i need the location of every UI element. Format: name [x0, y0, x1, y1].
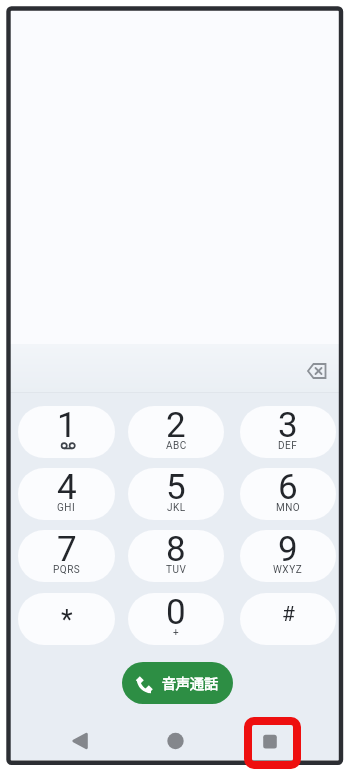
staticText: 7: [57, 530, 77, 570]
staticText: 0: [166, 593, 186, 633]
staticText: JKL: [167, 502, 186, 514]
staticText: GHI: [57, 502, 76, 514]
button[interactable]: 8: [128, 530, 224, 582]
button[interactable]: 0: [128, 593, 224, 645]
button[interactable]: [62, 723, 98, 759]
button[interactable]: [252, 723, 288, 759]
button[interactable]: 6: [240, 468, 336, 520]
staticText: WXYZ: [273, 564, 303, 576]
staticText: 8: [166, 530, 186, 570]
button[interactable]: [157, 723, 193, 759]
staticText: 2: [166, 406, 186, 446]
staticText: *: [61, 604, 73, 636]
button[interactable]: 2: [128, 406, 224, 458]
staticText: DEF: [278, 440, 298, 452]
staticText: 6: [278, 468, 298, 508]
staticText: 3: [278, 406, 298, 446]
button[interactable]: *: [18, 593, 115, 645]
staticText: 4: [57, 468, 77, 508]
staticText: 音声通話: [162, 673, 218, 693]
button[interactable]: 9: [240, 530, 336, 582]
staticText: +: [173, 627, 180, 639]
button[interactable]: #: [240, 593, 336, 645]
button[interactable]: 1: [18, 406, 115, 458]
staticText: PQRS: [53, 564, 81, 576]
staticText: 5: [166, 468, 186, 508]
button[interactable]: [122, 662, 233, 704]
staticText: 9: [278, 530, 298, 570]
button[interactable]: 5: [128, 468, 224, 520]
button[interactable]: 7: [18, 530, 115, 582]
button[interactable]: [303, 357, 331, 385]
staticText: MNO: [276, 502, 301, 514]
staticText: 音声通話: [162, 673, 218, 693]
staticText: TUV: [166, 564, 187, 576]
button[interactable]: 4: [18, 468, 115, 520]
staticText: 1: [57, 406, 77, 446]
staticText: #: [282, 602, 295, 627]
staticText: ABC: [166, 440, 187, 452]
button[interactable]: 3: [240, 406, 336, 458]
